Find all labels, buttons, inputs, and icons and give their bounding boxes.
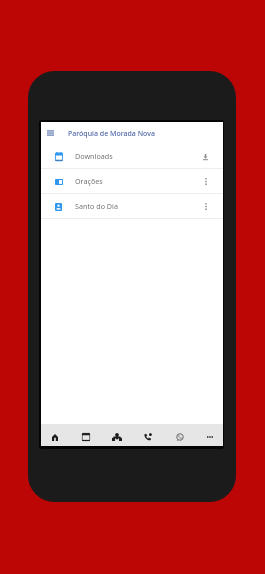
button[interactable]: Add call	[134, 426, 162, 448]
button[interactable]: Calendar	[72, 426, 100, 448]
button[interactable]: Home	[41, 426, 69, 448]
button[interactable]: More options	[196, 426, 224, 448]
staticText: Paróquia de Morada Nova	[68, 129, 155, 139]
button[interactable]: Download	[199, 150, 212, 163]
button[interactable]: Open navigation menu	[42, 125, 58, 141]
staticText: Orações	[75, 176, 103, 186]
button[interactable]: WhatsApp	[166, 426, 194, 448]
button[interactable]: More options	[199, 200, 212, 213]
button[interactable]: Share	[103, 426, 131, 448]
button[interactable]: Santo do Dia	[41, 194, 223, 219]
button[interactable]: Downloads	[41, 144, 223, 169]
button[interactable]: More options	[199, 175, 212, 188]
button[interactable]: Orações	[41, 169, 223, 194]
staticText: Downloads	[75, 151, 113, 161]
staticText: Santo do Dia	[75, 201, 119, 211]
